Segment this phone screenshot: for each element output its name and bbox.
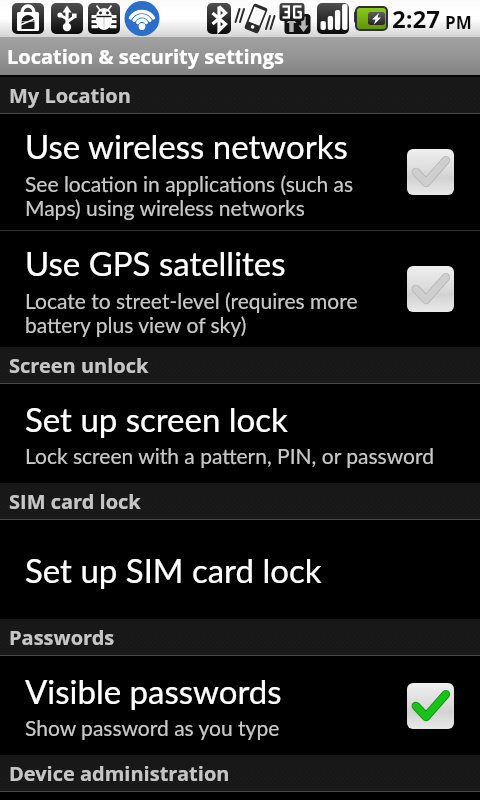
staticText: Set up SIM card lock xyxy=(25,550,322,590)
staticText: Show password as you type xyxy=(25,715,280,740)
button[interactable]: Set up screen lock xyxy=(0,384,480,483)
staticText: 2:27 xyxy=(392,2,440,35)
staticText: Device administration xyxy=(9,760,230,787)
staticText: PM xyxy=(445,11,472,34)
staticText: Set up screen lock xyxy=(25,399,288,439)
staticText: Locate to street-level (requires more xyxy=(25,288,358,313)
staticText: Screen unlock xyxy=(9,352,149,379)
staticText: Visible passwords xyxy=(25,671,282,711)
staticText: Maps) using wireless networks xyxy=(25,195,305,220)
button[interactable]: Unchecked xyxy=(407,266,454,312)
staticText: My Location xyxy=(9,82,131,109)
button[interactable]: Unchecked xyxy=(407,149,454,195)
button[interactable]: Set up SIM card lock xyxy=(0,520,480,619)
staticText: See location in applications (such as xyxy=(25,171,354,196)
staticText: battery plus view of sky) xyxy=(25,312,247,337)
staticText: Use wireless networks xyxy=(25,126,348,166)
button[interactable]: Use wireless networks xyxy=(0,114,480,230)
button[interactable]: Use GPS satellites xyxy=(0,231,480,347)
staticText: SIM card lock xyxy=(9,488,141,515)
button[interactable]: Checked xyxy=(407,683,454,729)
staticText: Lock screen with a pattern, PIN, or pass… xyxy=(25,443,434,468)
button[interactable]: Visible passwords xyxy=(0,656,480,755)
staticText: Location & security settings xyxy=(7,43,284,70)
staticText: Passwords xyxy=(9,624,115,651)
staticText: Use GPS satellites xyxy=(25,243,286,283)
